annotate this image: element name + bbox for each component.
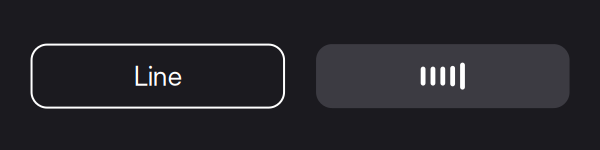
- button[interactable]: Waveform: [316, 44, 570, 108]
- button[interactable]: Line: [31, 44, 285, 108]
- staticText: Line: [134, 60, 182, 92]
